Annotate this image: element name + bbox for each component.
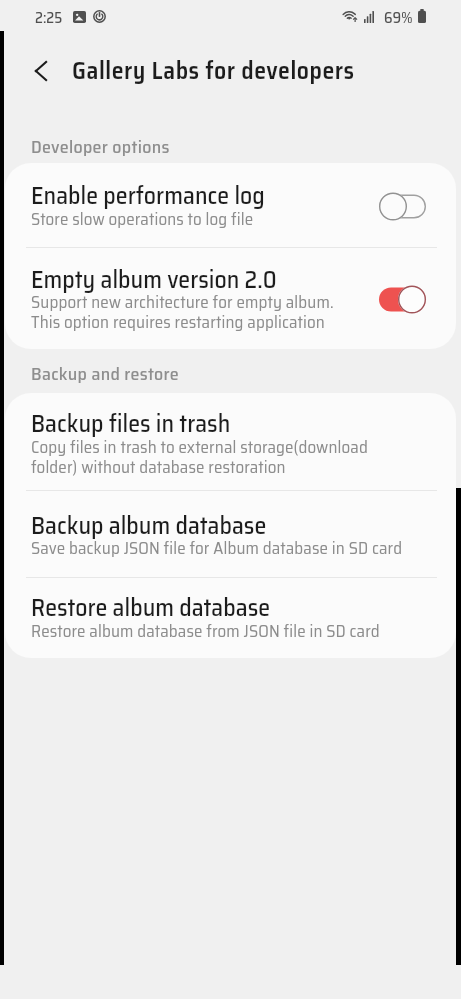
button[interactable]: Restore album database <box>5 578 456 658</box>
staticText: Restore album database from JSON file in… <box>31 618 380 645</box>
button[interactable]: On <box>379 285 426 314</box>
staticText: 2:25 <box>35 6 63 30</box>
staticText: Backup and restore <box>31 360 180 388</box>
staticText: 69% <box>384 6 413 30</box>
staticText: Store slow operations to log file <box>31 206 254 233</box>
staticText: Save backup JSON file for Album database… <box>31 535 403 562</box>
button[interactable]: Off <box>379 192 426 221</box>
button[interactable]: Backup album database <box>5 491 456 577</box>
staticText: Copy files in trash to external storage(… <box>31 434 368 481</box>
staticText: Empty album version 2.0 <box>31 261 277 299</box>
staticText: Backup files in trash <box>31 405 231 443</box>
staticText: Backup album database <box>31 507 267 545</box>
button[interactable]: Empty album version 2.0 <box>5 248 456 349</box>
staticText: Support new architecture for empty album… <box>31 289 334 336</box>
staticText: Gallery Labs for developers <box>72 52 355 90</box>
button[interactable]: Navigate up <box>25 55 56 86</box>
staticText: Restore album database <box>31 589 271 627</box>
staticText: Enable performance log <box>31 177 265 215</box>
staticText: Developer options <box>31 133 170 161</box>
button[interactable]: Enable performance log <box>5 163 456 247</box>
button[interactable]: Backup files in trash <box>5 393 456 490</box>
